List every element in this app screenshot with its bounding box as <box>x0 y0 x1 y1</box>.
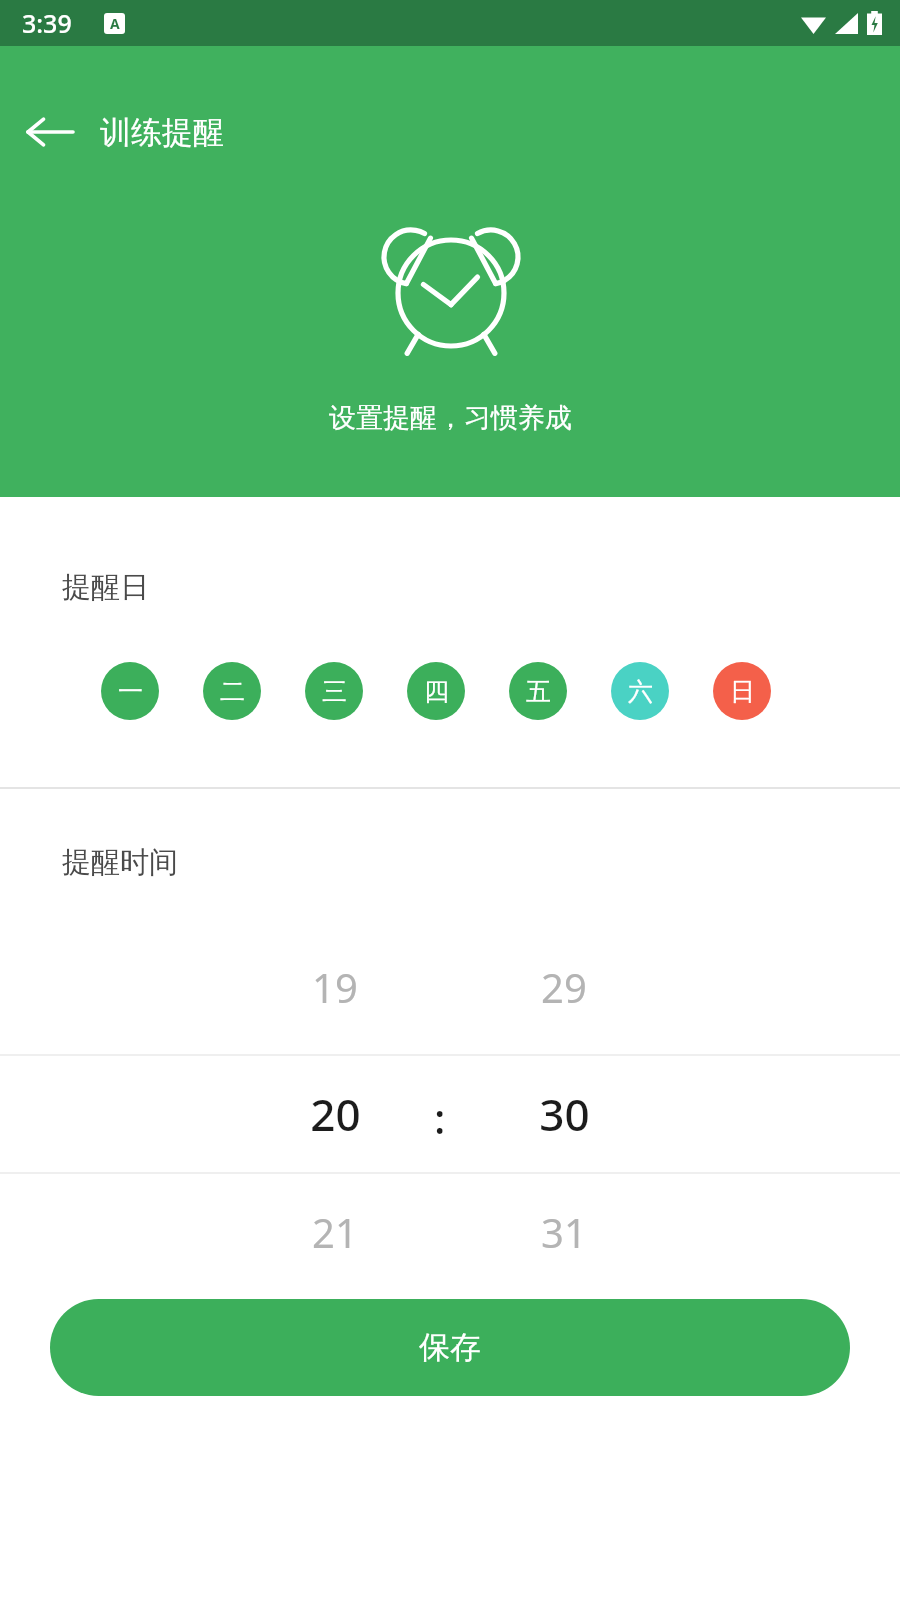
button[interactable]: 31 <box>484 1202 644 1262</box>
staticText: 设置提醒，习惯养成 <box>329 401 572 435</box>
staticText: 3:39 <box>22 6 72 40</box>
button[interactable]: 21 <box>255 1202 415 1262</box>
staticText: 日 <box>730 676 755 707</box>
staticText: 19 <box>312 960 358 1014</box>
staticText: : <box>434 1089 446 1141</box>
button[interactable]: 五 <box>509 662 567 720</box>
staticText: A <box>110 14 120 33</box>
button[interactable]: Back <box>0 96 100 168</box>
button[interactable]: 20 <box>255 1084 415 1144</box>
button[interactable]: 29 <box>484 957 644 1017</box>
button[interactable]: 三 <box>305 662 363 720</box>
button[interactable]: 30 <box>484 1084 644 1144</box>
staticText: 训练提醒 <box>100 113 224 152</box>
button[interactable]: 保存 <box>50 1299 850 1396</box>
staticText: 一 <box>118 676 143 707</box>
staticText: 四 <box>424 676 449 707</box>
staticText: 29 <box>541 960 587 1014</box>
staticText: 21 <box>312 1205 358 1259</box>
staticText: 31 <box>541 1205 587 1259</box>
staticText: 五 <box>526 676 551 707</box>
staticText: 二 <box>220 676 245 707</box>
staticText: 提醒日 <box>62 569 149 606</box>
button[interactable]: 二 <box>203 662 261 720</box>
staticText: 三 <box>322 676 347 707</box>
staticText: 六 <box>628 676 653 707</box>
button[interactable]: 六 <box>611 662 669 720</box>
button[interactable]: 日 <box>713 662 771 720</box>
button[interactable]: 19 <box>255 957 415 1017</box>
staticText: 提醒时间 <box>62 844 178 881</box>
button[interactable]: 一 <box>101 662 159 720</box>
button[interactable]: 四 <box>407 662 465 720</box>
staticText: 20 <box>310 1084 361 1144</box>
staticText: 保存 <box>419 1328 481 1367</box>
staticText: 30 <box>539 1084 590 1144</box>
